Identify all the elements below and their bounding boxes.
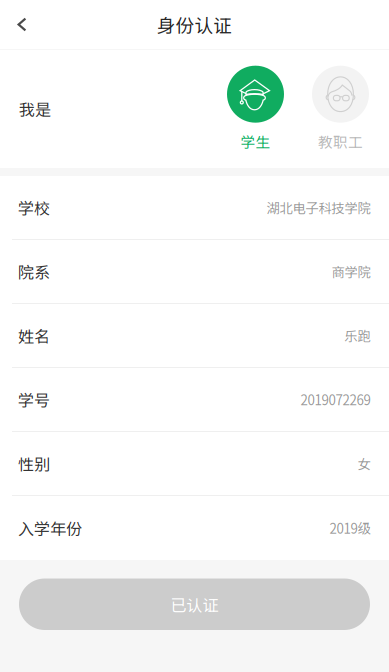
staticText: 性别 <box>18 452 50 475</box>
staticText: 湖北电子科技学院 <box>266 198 370 217</box>
staticText: 2019072269 <box>300 390 370 409</box>
button[interactable]: 教职工 <box>312 66 369 152</box>
staticText: 乐跑 <box>344 326 370 345</box>
staticText: 学校 <box>18 196 50 219</box>
staticText: 我是 <box>19 97 51 120</box>
button[interactable]: Back <box>0 2 44 46</box>
staticText: 身份认证 <box>156 11 232 38</box>
staticText: 商学院 <box>331 262 370 281</box>
staticText: 女 <box>357 454 370 473</box>
staticText: 2019级 <box>329 518 370 538</box>
staticText: 学生 <box>240 131 270 152</box>
staticText: 入学年份 <box>18 516 82 540</box>
staticText: 学号 <box>18 388 50 411</box>
staticText: 教职工 <box>318 131 363 152</box>
button[interactable]: 已认证 <box>19 578 370 630</box>
staticText: 已认证 <box>170 593 218 616</box>
staticText: 姓名 <box>18 324 50 347</box>
button[interactable]: 学生 <box>227 66 284 152</box>
staticText: 院系 <box>18 260 50 283</box>
